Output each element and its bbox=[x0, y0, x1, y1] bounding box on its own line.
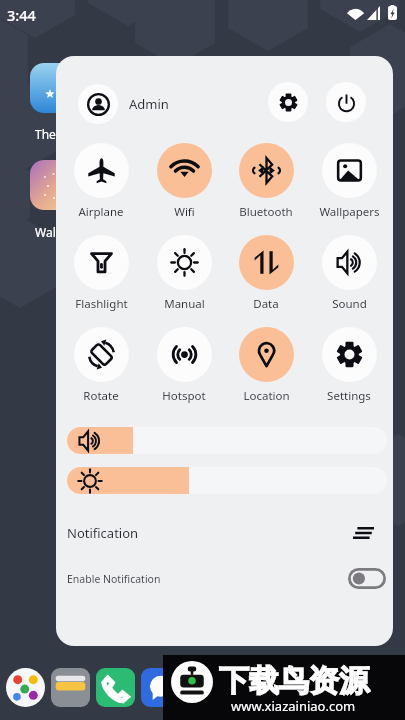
staticText: Location bbox=[243, 388, 290, 404]
staticText: Data bbox=[253, 296, 279, 312]
staticText: Enable Notification bbox=[67, 572, 161, 586]
staticText: Sound bbox=[332, 296, 367, 312]
staticText: Wifi bbox=[174, 204, 195, 220]
button[interactable]: Settings bbox=[268, 82, 308, 122]
button[interactable]: Rotate bbox=[62, 327, 140, 404]
button[interactable]: Bluetooth bbox=[227, 143, 305, 220]
staticText: Hotspot bbox=[162, 388, 206, 404]
button[interactable]: Enable Notification bbox=[56, 562, 393, 594]
staticText: Settings bbox=[327, 388, 371, 404]
button[interactable]: Location bbox=[227, 327, 305, 404]
staticText: Wallp bbox=[35, 224, 67, 240]
staticText: Bluetooth bbox=[239, 204, 293, 220]
button[interactable]: Volume bbox=[67, 427, 387, 454]
staticText: 下载鸟资源 bbox=[219, 662, 369, 700]
staticText: Wallpapers bbox=[319, 204, 380, 220]
staticText: Notification bbox=[67, 524, 139, 542]
staticText: Theme bbox=[35, 126, 74, 142]
button[interactable]: Wifi bbox=[145, 143, 223, 220]
staticText: Admin bbox=[129, 95, 169, 113]
staticText: Airplane bbox=[78, 204, 124, 220]
button[interactable]: Sound bbox=[310, 235, 388, 312]
button[interactable]: Admin bbox=[78, 82, 198, 126]
staticText: Flashlight bbox=[75, 296, 128, 312]
button[interactable]: Data bbox=[227, 235, 305, 312]
staticText: Rotate bbox=[83, 388, 119, 404]
button[interactable]: Flashlight bbox=[62, 235, 140, 312]
staticText: Manual bbox=[164, 296, 205, 312]
button[interactable]: Wallpapers bbox=[310, 143, 388, 220]
button[interactable]: Brightness bbox=[67, 467, 387, 494]
button[interactable]: Manual bbox=[145, 235, 223, 312]
button[interactable]: Notification bbox=[56, 518, 393, 548]
button[interactable]: Power bbox=[326, 82, 366, 122]
button[interactable]: Airplane bbox=[62, 143, 140, 220]
button[interactable]: Settings bbox=[310, 327, 388, 404]
button[interactable]: Hotspot bbox=[145, 327, 223, 404]
staticText: www.xiazainiao.com bbox=[231, 697, 356, 715]
staticText: 3:44 bbox=[7, 5, 36, 25]
